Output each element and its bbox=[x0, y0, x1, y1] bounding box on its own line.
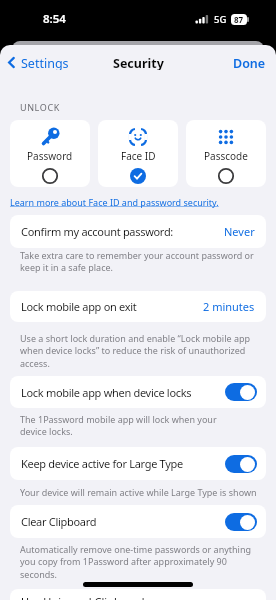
staticText: Security bbox=[113, 55, 164, 70]
staticText: UNLOCK bbox=[20, 101, 60, 113]
button[interactable] bbox=[225, 383, 257, 401]
button[interactable] bbox=[225, 455, 257, 473]
button[interactable]: Settings bbox=[6, 55, 76, 70]
staticText: Never bbox=[224, 224, 255, 239]
button[interactable]: Lock mobile app on exit bbox=[10, 291, 266, 322]
staticText: Passcode bbox=[204, 149, 248, 163]
staticText: Take extra care to remember your account… bbox=[20, 249, 254, 274]
button[interactable]: Passcode bbox=[186, 120, 266, 187]
staticText: Use Universal Clipboard bbox=[21, 594, 145, 600]
staticText: 5G bbox=[214, 13, 227, 26]
staticText: Your device will remain active while Lar… bbox=[20, 486, 257, 498]
staticText: Lock mobile app when device locks bbox=[21, 385, 192, 400]
button[interactable]: Use Universal Clipboard bbox=[10, 589, 266, 600]
button[interactable]: Keep device active for Large Type bbox=[10, 447, 266, 480]
staticText: Face ID bbox=[121, 149, 156, 163]
staticText: The 1Password mobile app will lock when … bbox=[20, 413, 217, 438]
staticText: Done bbox=[233, 55, 266, 70]
button[interactable] bbox=[225, 513, 257, 531]
button[interactable]: Lock mobile app when device locks bbox=[10, 376, 266, 408]
staticText: 87 bbox=[234, 14, 244, 25]
button[interactable]: Password bbox=[10, 120, 90, 187]
staticText: Password bbox=[27, 149, 73, 163]
button[interactable]: Face ID bbox=[98, 120, 178, 187]
button[interactable]: Learn more about Face ID and password se… bbox=[10, 196, 219, 208]
staticText: Use a short lock duration and enable “Lo… bbox=[20, 332, 251, 370]
staticText: Lock mobile app on exit bbox=[21, 299, 137, 314]
staticText: Confirm my account password: bbox=[21, 224, 173, 239]
staticText: Clear Clipboard bbox=[21, 514, 97, 529]
staticText: 2 minutes bbox=[203, 299, 255, 314]
staticText: 8:54 bbox=[43, 11, 66, 27]
button[interactable]: Clear Clipboard bbox=[10, 505, 266, 538]
button[interactable]: Confirm my account password: bbox=[10, 215, 266, 248]
staticText: Settings bbox=[21, 55, 69, 70]
button[interactable]: Done bbox=[180, 55, 266, 70]
staticText: Automatically remove one-time passwords … bbox=[20, 543, 252, 581]
staticText: Keep device active for Large Type bbox=[21, 456, 183, 471]
